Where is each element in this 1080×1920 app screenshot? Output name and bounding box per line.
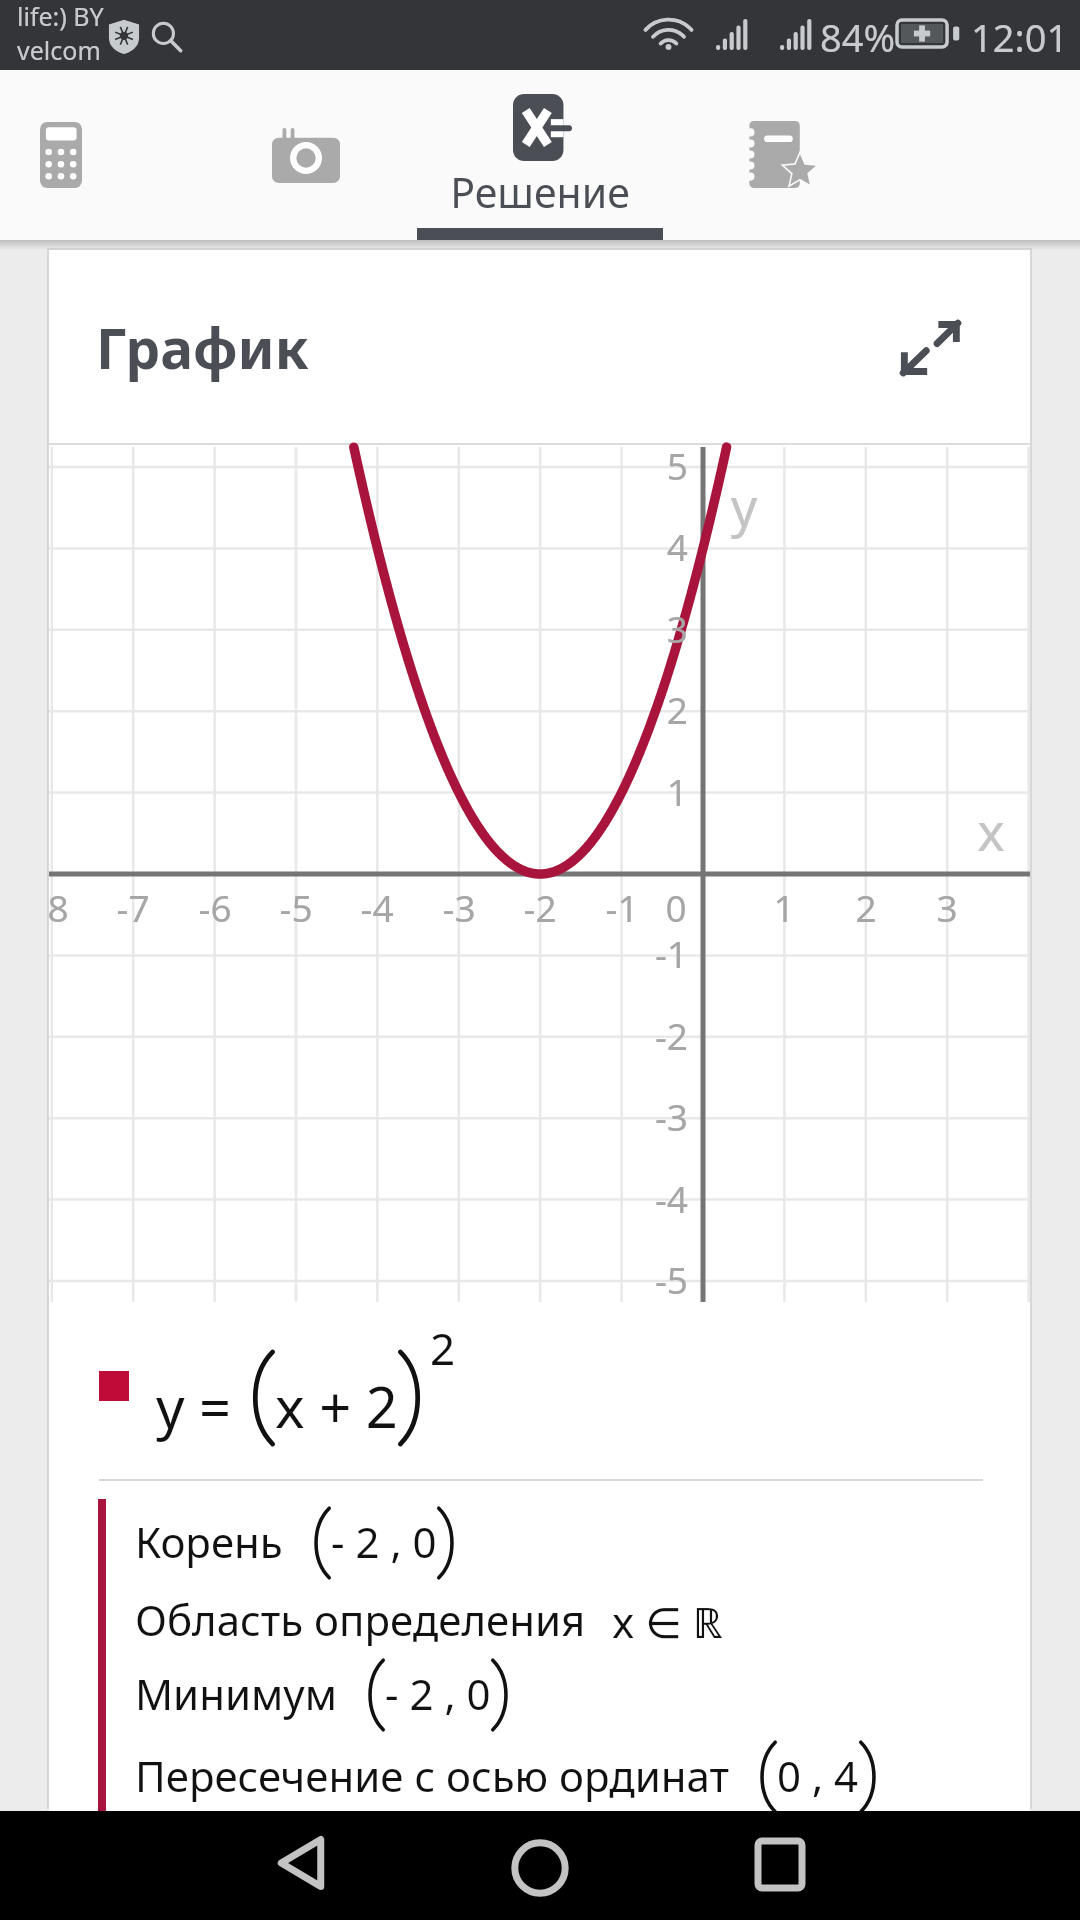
button[interactable]: Решение (417, 70, 663, 240)
staticText: 0 , 4 (777, 1747, 859, 1804)
button[interactable]: Expand graph (880, 300, 980, 400)
staticText: y (714, 470, 774, 541)
staticText: -2 (490, 882, 590, 932)
staticText: -5 (580, 1254, 688, 1304)
button[interactable]: Calculator (0, 70, 181, 240)
button[interactable]: Home (420, 1811, 660, 1919)
staticText: -3 (580, 1091, 688, 1141)
staticText: -7 (83, 882, 183, 932)
button[interactable]: Back (180, 1811, 420, 1919)
staticText: Пересечение с осью ординат (135, 1747, 729, 1804)
staticText: y = (156, 1368, 246, 1444)
staticText: Решение (417, 164, 663, 220)
staticText: -8 (49, 882, 102, 932)
other: Search (149, 19, 185, 53)
staticText: 2 (816, 882, 916, 932)
staticText: x (961, 795, 1021, 866)
button[interactable]: Recents (660, 1811, 900, 1919)
staticText: -6 (165, 882, 265, 932)
staticText: -5 (246, 882, 346, 932)
button[interactable]: Camera (186, 70, 426, 240)
staticText: x + 2 (275, 1368, 398, 1444)
staticText: -1 (572, 882, 672, 932)
staticText: 0 (626, 882, 726, 932)
staticText: Минимум (135, 1665, 337, 1722)
staticText: Область определения (135, 1591, 586, 1648)
staticText: - 2 , 0 (331, 1513, 437, 1570)
staticText: 3 (897, 882, 997, 932)
staticText: 4 (580, 521, 688, 571)
staticText: -4 (327, 882, 427, 932)
staticText: 84% (820, 11, 896, 63)
staticText: velcom (17, 33, 101, 67)
staticText: -3 (409, 882, 509, 932)
staticText: 1 (580, 766, 688, 816)
staticText: 12:01 (971, 11, 1069, 63)
staticText: 2 (430, 1318, 456, 1378)
staticText: -2 (580, 1010, 688, 1060)
staticText: - 2 , 0 (385, 1665, 491, 1722)
staticText: Корень (135, 1513, 283, 1570)
staticText: -4 (580, 1173, 688, 1223)
staticText: 5 (580, 440, 688, 490)
staticText: 3 (580, 603, 688, 653)
staticText: -1 (580, 928, 688, 978)
staticText: x ∈ ℝ (612, 1593, 723, 1650)
staticText: 2 (580, 684, 688, 734)
staticText: 1 (734, 882, 834, 932)
staticText: life:) BY (17, 0, 104, 33)
staticText: График (96, 310, 309, 385)
button[interactable]: Notebook (663, 70, 903, 240)
